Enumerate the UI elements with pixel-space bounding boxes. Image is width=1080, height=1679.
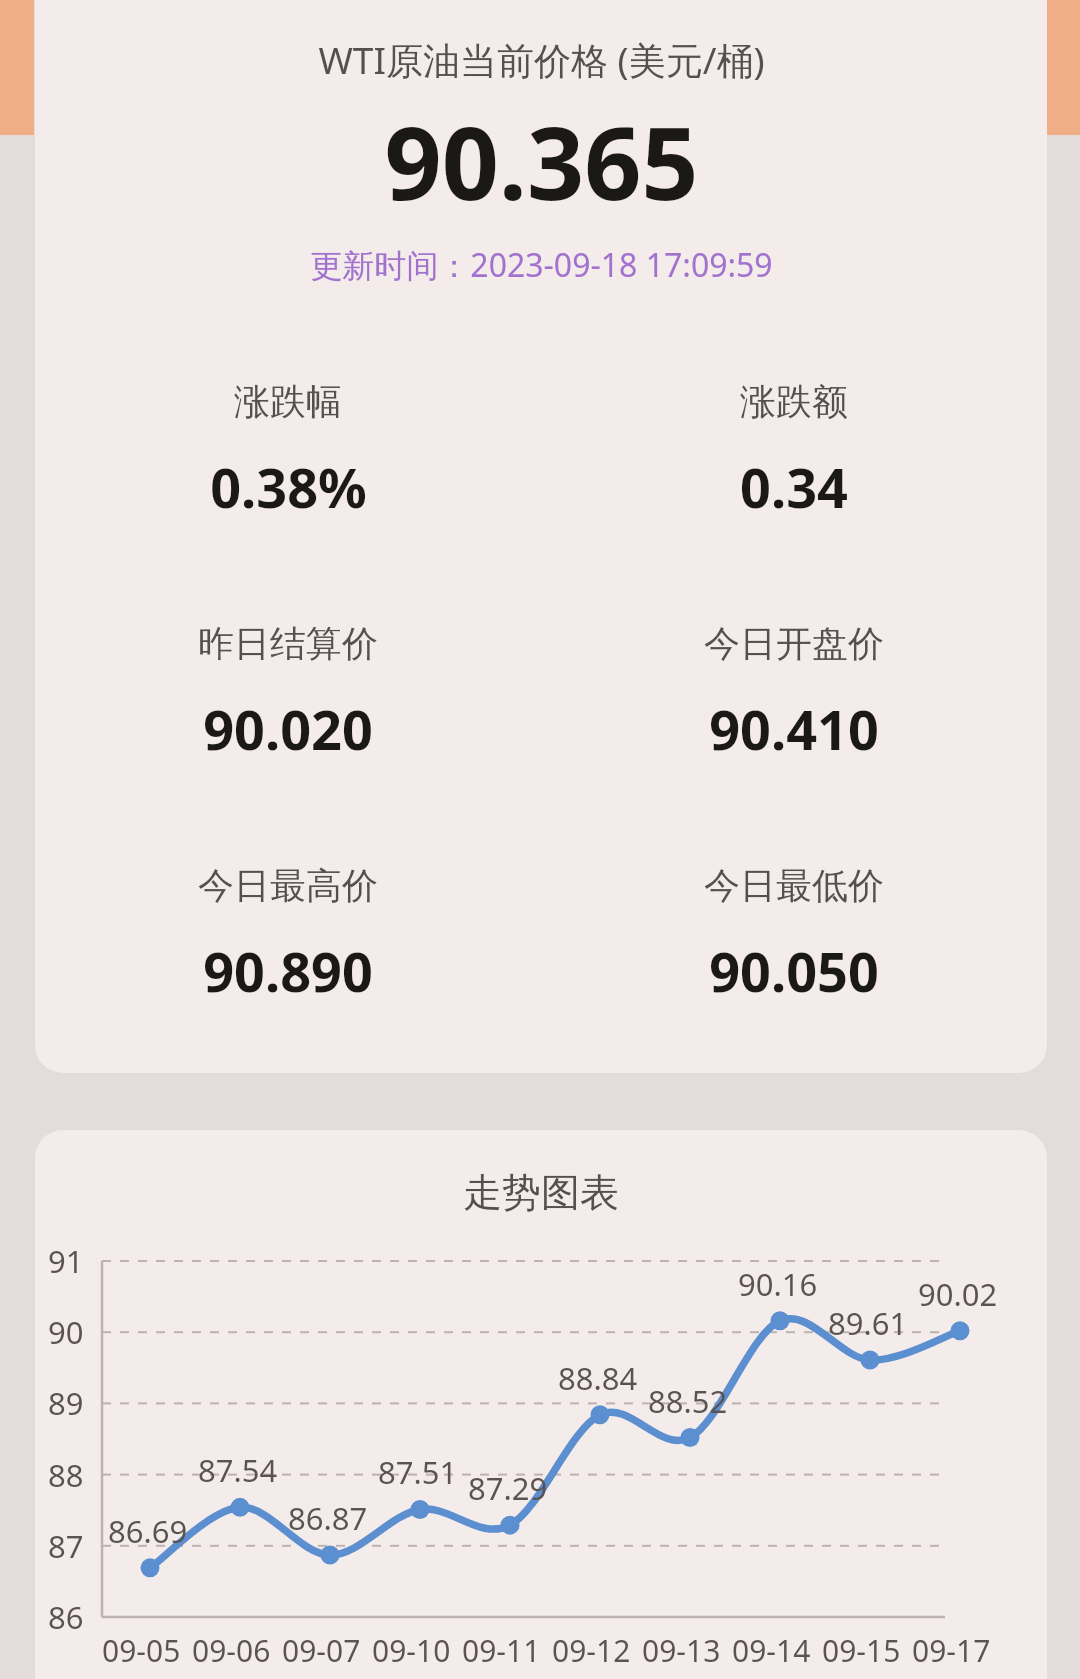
- staticText: 09-12: [552, 1630, 631, 1671]
- staticText: 走势图表: [463, 1168, 619, 1217]
- staticText: 87.51: [378, 1451, 458, 1493]
- staticText: 86.69: [108, 1510, 188, 1552]
- staticText: 09-05: [102, 1630, 181, 1671]
- staticText: 87: [48, 1525, 84, 1567]
- button[interactable]: 昨日结算价: [35, 621, 541, 766]
- staticText: 89.61: [828, 1302, 908, 1344]
- staticText: 90: [48, 1311, 84, 1353]
- staticText: 87.29: [468, 1467, 548, 1509]
- staticText: 88: [48, 1454, 84, 1496]
- staticText: 90.410: [709, 692, 879, 766]
- staticText: 09-17: [912, 1630, 991, 1671]
- staticText: 90.16: [738, 1263, 818, 1305]
- staticText: 86: [48, 1596, 84, 1638]
- button[interactable]: WTI原油当前价格 (美元/桶): [35, 0, 1047, 1073]
- button[interactable]: 涨跌额: [541, 379, 1047, 524]
- staticText: 88.84: [558, 1357, 638, 1399]
- staticText: 86.87: [288, 1497, 368, 1539]
- staticText: 90.02: [918, 1273, 998, 1315]
- staticText: 今日最低价: [704, 863, 884, 908]
- staticText: 90.890: [203, 934, 373, 1008]
- staticText: 涨跌幅: [234, 379, 342, 424]
- other: WTI 原油价格走势图表: [0, 0, 1080, 1679]
- staticText: 89: [48, 1382, 84, 1424]
- staticText: 09-11: [462, 1630, 541, 1671]
- staticText: 90.050: [709, 934, 879, 1008]
- staticText: 09-06: [192, 1630, 271, 1671]
- staticText: 涨跌额: [740, 379, 848, 424]
- staticText: WTI原油当前价格 (美元/桶): [318, 34, 765, 85]
- staticText: 今日开盘价: [704, 621, 884, 666]
- staticText: 09-07: [282, 1630, 361, 1671]
- staticText: 昨日结算价: [198, 621, 378, 666]
- button[interactable]: 今日开盘价: [541, 621, 1047, 766]
- staticText: 09-13: [642, 1630, 721, 1671]
- staticText: 09-10: [372, 1630, 451, 1671]
- button[interactable]: 走势图表: [35, 1130, 1047, 1679]
- staticText: 88.52: [648, 1380, 728, 1422]
- button[interactable]: 今日最低价: [541, 863, 1047, 1008]
- staticText: 90.365: [384, 93, 699, 229]
- staticText: 09-15: [822, 1630, 901, 1671]
- staticText: 今日最高价: [198, 863, 378, 908]
- staticText: 91: [48, 1240, 84, 1282]
- staticText: 90.020: [203, 692, 373, 766]
- staticText: 0.38%: [210, 450, 367, 524]
- button[interactable]: 今日最高价: [35, 863, 541, 1008]
- staticText: 更新时间：2023-09-18 17:09:59: [310, 243, 773, 287]
- staticText: 0.34: [740, 450, 848, 524]
- button[interactable]: 涨跌幅: [35, 379, 541, 524]
- staticText: 87.54: [198, 1449, 278, 1491]
- staticText: 09-14: [732, 1630, 811, 1671]
